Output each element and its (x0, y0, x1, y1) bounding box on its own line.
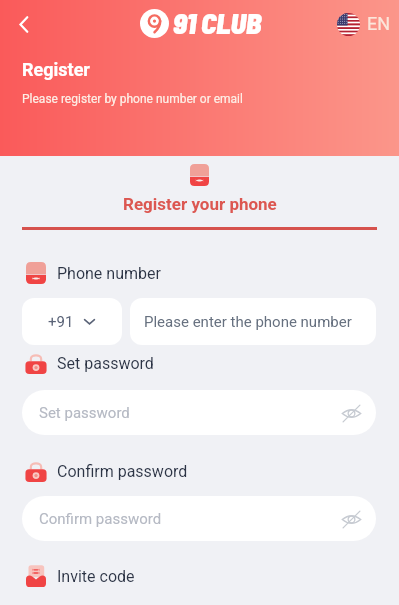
button[interactable]: 91 (140, 6, 262, 41)
button[interactable]: EN (337, 13, 391, 36)
button[interactable]: Confirm password (22, 496, 376, 541)
staticText: Set password (39, 404, 130, 422)
button[interactable]: Back (6, 7, 40, 41)
staticText: Please enter the phone number (144, 313, 352, 331)
staticText: Register (22, 59, 90, 80)
staticText: CLUB (201, 5, 262, 40)
button[interactable]: +91 (22, 298, 122, 345)
staticText: Phone number (57, 264, 161, 283)
staticText: Set password (57, 354, 154, 373)
button[interactable]: Please enter the phone number (130, 298, 376, 345)
staticText: Invite code (57, 567, 135, 586)
button[interactable]: Set password (22, 390, 376, 435)
staticText: EN (367, 13, 391, 34)
staticText: Please register by phone number or email (22, 92, 243, 106)
staticText: Register your phone (123, 194, 277, 214)
staticText: Confirm password (57, 462, 188, 481)
staticText: 91 (173, 5, 196, 40)
staticText: +91 (48, 313, 74, 331)
staticText: Confirm password (39, 510, 162, 528)
button[interactable]: Show password (338, 506, 364, 532)
button[interactable]: Show password (338, 400, 364, 426)
